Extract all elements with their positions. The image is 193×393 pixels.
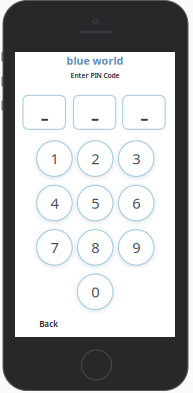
staticText: 6 xyxy=(132,193,140,213)
button[interactable]: Back xyxy=(35,315,62,333)
staticText: 9 xyxy=(132,238,140,257)
staticText: 4 xyxy=(50,193,58,213)
staticText: 8 xyxy=(91,238,99,257)
button[interactable]: 6 xyxy=(118,185,154,221)
staticText: 0 xyxy=(91,282,99,302)
button[interactable]: 3 xyxy=(118,141,154,176)
button[interactable]: 2 xyxy=(77,141,113,176)
button[interactable]: 7 xyxy=(37,230,72,265)
staticText: 7 xyxy=(50,238,58,257)
staticText: 2 xyxy=(91,149,99,168)
button[interactable]: 4 xyxy=(37,185,72,221)
button[interactable]: 1 xyxy=(37,141,72,176)
staticText: blue world xyxy=(66,53,123,68)
staticText: 1 xyxy=(50,149,58,168)
button[interactable]: 5 xyxy=(77,185,113,221)
staticText: 5 xyxy=(91,193,99,213)
staticText: Enter PIN Code xyxy=(70,71,119,80)
staticText: Back xyxy=(39,319,58,329)
button[interactable]: 8 xyxy=(77,230,113,265)
button[interactable]: 0 xyxy=(77,274,113,309)
button[interactable]: 9 xyxy=(118,230,154,265)
staticText: 3 xyxy=(132,149,140,168)
